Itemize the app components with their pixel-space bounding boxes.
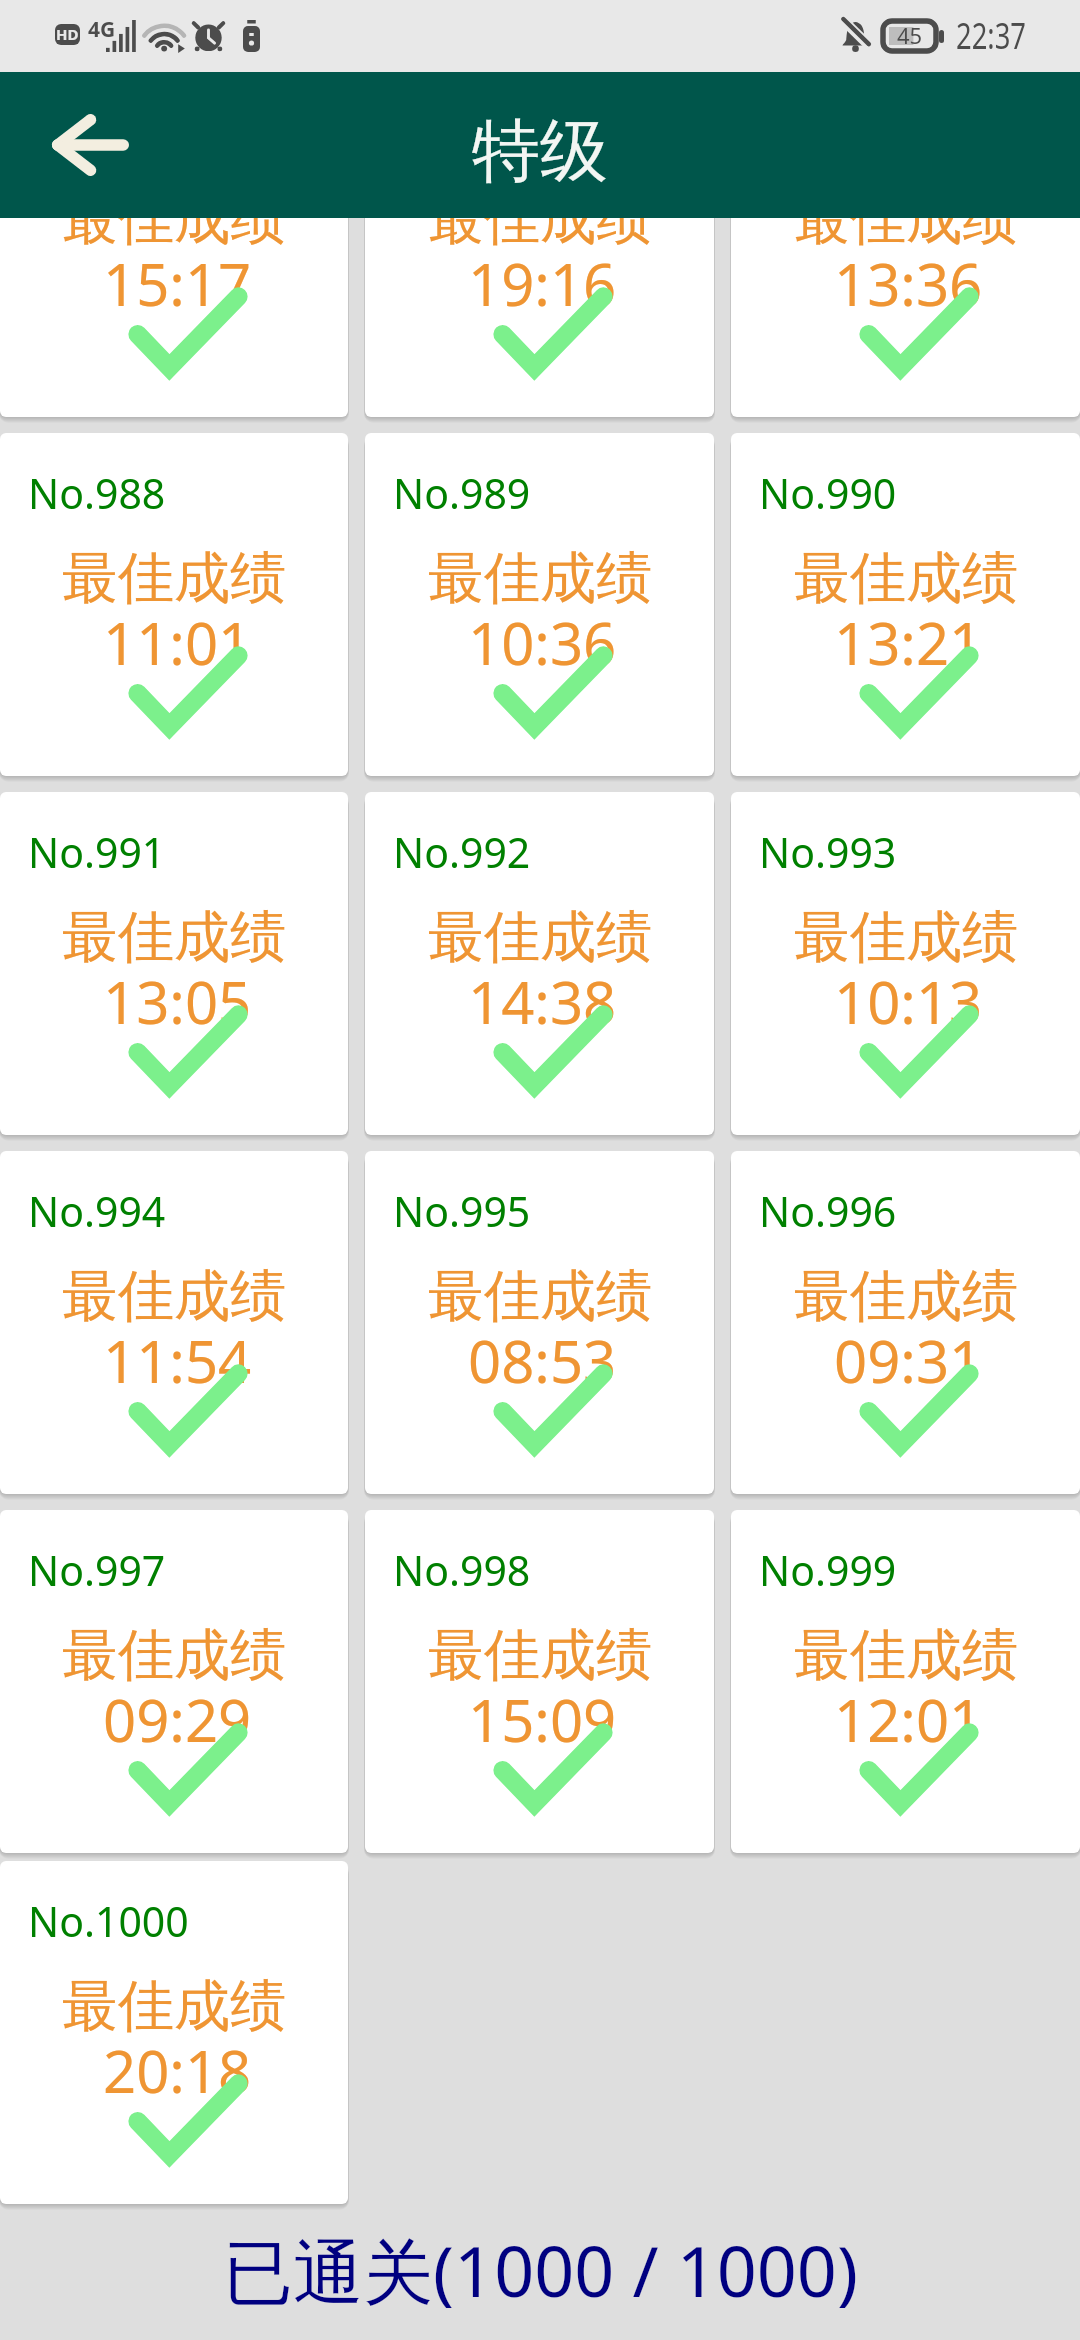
staticText: 已通关(1000 / 1000) (223, 2222, 858, 2318)
staticText: 09:31 (834, 1321, 983, 1400)
staticText: 最佳成绩 (62, 1971, 286, 2042)
staticText: 4G (88, 15, 116, 44)
staticText: 最佳成绩 (62, 902, 286, 973)
staticText: 最佳成绩 (62, 1261, 286, 1332)
staticText: 最佳成绩 (62, 218, 286, 255)
staticText: No.997 (28, 1542, 166, 1598)
staticText: 45 (897, 20, 923, 50)
staticText: No.988 (28, 465, 166, 521)
button[interactable]: No.999 (731, 1510, 1080, 1853)
staticText: 最佳成绩 (428, 1261, 652, 1332)
button[interactable]: No.997 (0, 1510, 348, 1853)
staticText: 最佳成绩 (62, 543, 286, 614)
staticText: 15:17 (103, 244, 252, 323)
button[interactable]: No.985 (0, 218, 348, 417)
staticText: No.995 (393, 1183, 531, 1239)
staticText: 特级 (472, 109, 608, 195)
staticText: 12:01 (834, 1680, 983, 1759)
staticText: No.989 (393, 465, 531, 521)
staticText: 最佳成绩 (794, 543, 1018, 614)
button[interactable]: No.1000 (0, 1861, 348, 2204)
staticText: 10:36 (468, 603, 617, 682)
staticText: HD (56, 24, 79, 44)
staticText: 10:13 (834, 962, 983, 1041)
staticText: No.992 (393, 824, 531, 880)
staticText: 最佳成绩 (794, 218, 1018, 255)
staticText: 13:05 (103, 962, 252, 1041)
staticText: 14:38 (468, 962, 617, 1041)
staticText: 11:01 (103, 603, 252, 682)
staticText: 最佳成绩 (62, 1620, 286, 1691)
staticText: 19:16 (468, 244, 617, 323)
button[interactable]: No.989 (365, 433, 714, 776)
staticText: 11:54 (103, 1321, 252, 1400)
staticText: 15:09 (468, 1680, 617, 1759)
button[interactable]: No.994 (0, 1151, 348, 1494)
staticText: 09:29 (103, 1680, 252, 1759)
staticText: 13:36 (834, 244, 983, 323)
staticText: 最佳成绩 (428, 218, 652, 255)
staticText: 最佳成绩 (428, 1620, 652, 1691)
staticText: 最佳成绩 (794, 1261, 1018, 1332)
button[interactable]: No.992 (365, 792, 714, 1135)
staticText: No.1000 (28, 1893, 189, 1949)
staticText: No.996 (759, 1183, 897, 1239)
button[interactable]: No.988 (0, 433, 348, 776)
staticText: No.998 (393, 1542, 531, 1598)
button[interactable]: No.990 (731, 433, 1080, 776)
staticText: 最佳成绩 (428, 543, 652, 614)
button[interactable]: No.995 (365, 1151, 714, 1494)
button[interactable]: No.998 (365, 1510, 714, 1853)
button[interactable]: No.993 (731, 792, 1080, 1135)
button[interactable]: Back (34, 89, 146, 201)
staticText: 最佳成绩 (428, 902, 652, 973)
button[interactable]: No.991 (0, 792, 348, 1135)
staticText: No.993 (759, 824, 897, 880)
staticText: 最佳成绩 (794, 902, 1018, 973)
staticText: No.991 (28, 824, 166, 880)
staticText: 最佳成绩 (794, 1620, 1018, 1691)
staticText: No.999 (759, 1542, 897, 1598)
button[interactable]: No.996 (731, 1151, 1080, 1494)
staticText: No.990 (759, 465, 897, 521)
staticText: 08:53 (468, 1321, 617, 1400)
button[interactable]: No.987 (731, 218, 1080, 417)
button[interactable]: No.986 (365, 218, 714, 417)
staticText: 20:18 (103, 2031, 252, 2110)
staticText: 22:37 (956, 9, 1026, 59)
staticText: No.994 (28, 1183, 166, 1239)
staticText: 13:21 (834, 603, 983, 682)
